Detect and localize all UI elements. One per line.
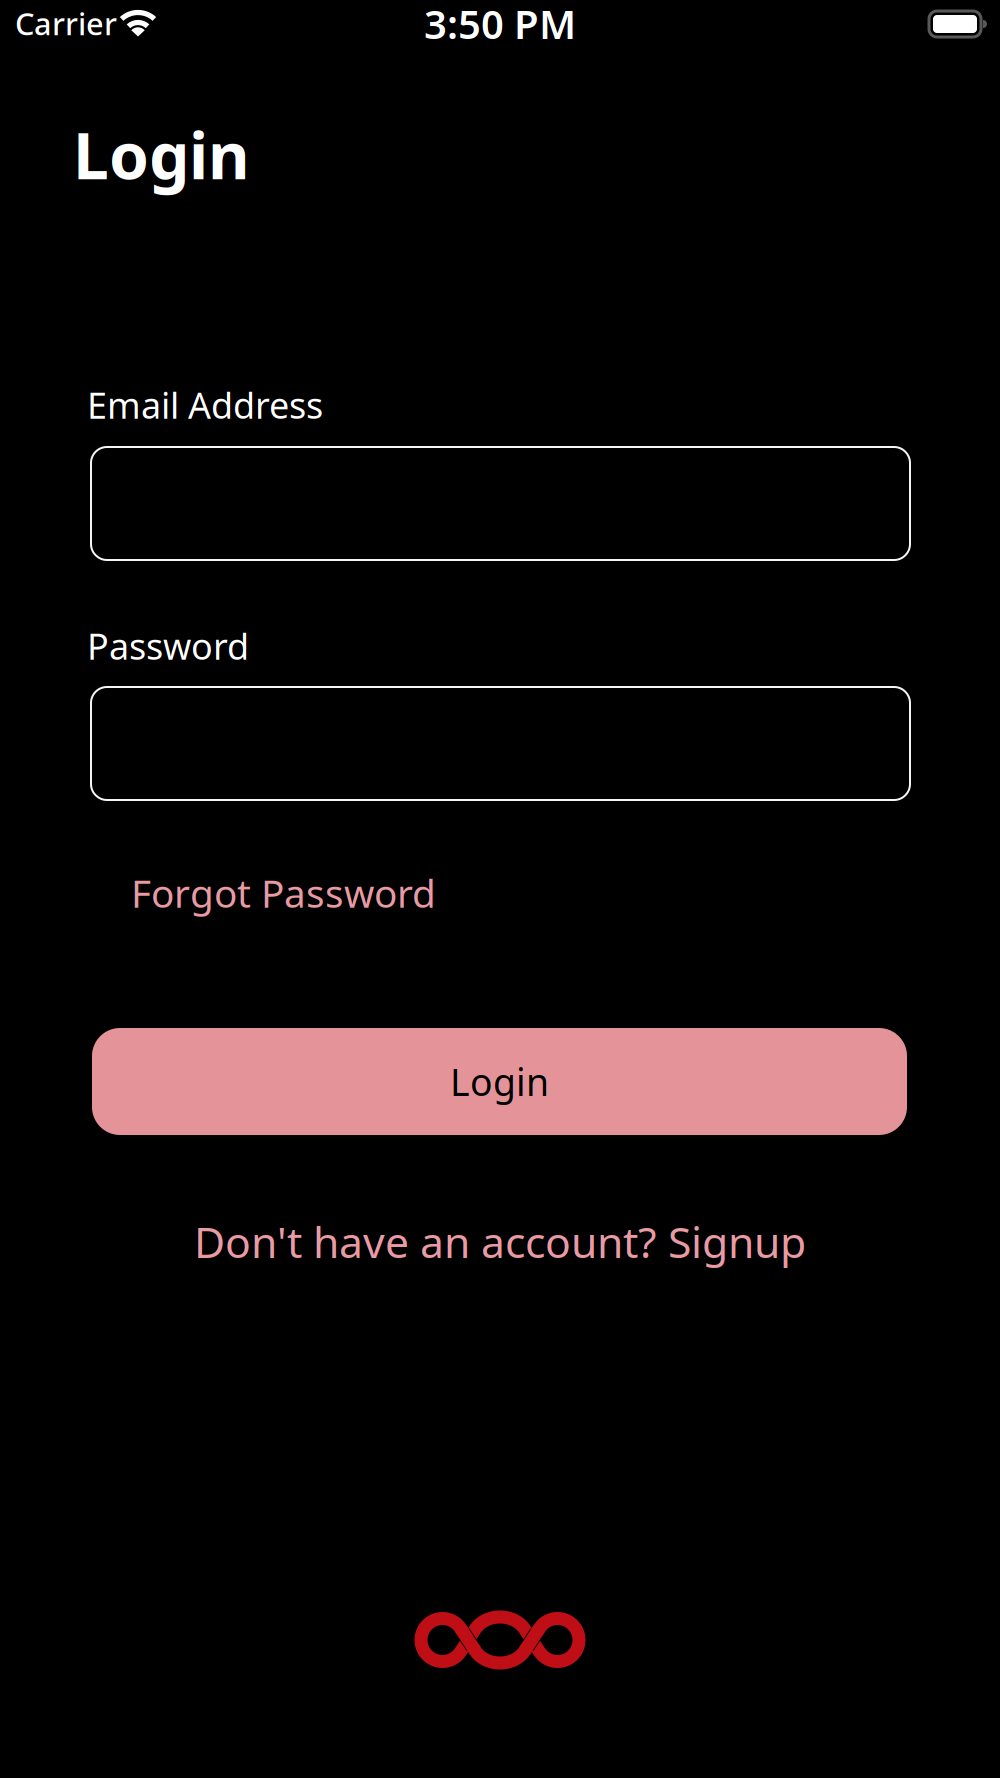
button[interactable]: Password bbox=[91, 687, 910, 800]
button[interactable]: Don't have an account? Signup bbox=[0, 1213, 1000, 1270]
staticText: 3:50 PM bbox=[424, 0, 576, 50]
staticText: Don't have an account? Signup bbox=[194, 1213, 806, 1270]
button[interactable]: Login bbox=[92, 1028, 907, 1135]
button[interactable]: Forgot Password bbox=[131, 867, 436, 918]
staticText: Email Address bbox=[87, 381, 323, 429]
staticText: Login bbox=[73, 112, 250, 197]
staticText: Forgot Password bbox=[131, 867, 436, 918]
staticText: Carrier bbox=[15, 3, 117, 44]
button[interactable]: Email Address bbox=[91, 447, 910, 560]
staticText: Password bbox=[87, 622, 249, 670]
staticText: Login bbox=[450, 1057, 549, 1106]
